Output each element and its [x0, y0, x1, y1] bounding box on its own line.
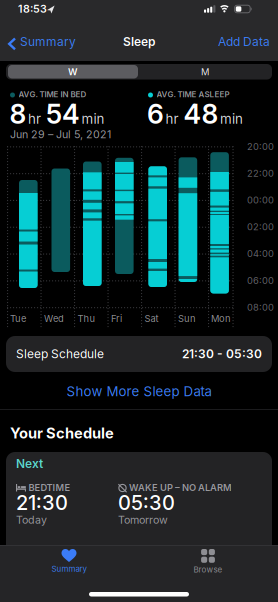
button[interactable]: Summary: [29, 549, 109, 573]
staticText: 06:00: [247, 275, 274, 286]
staticText: BEDTIME: [28, 482, 70, 493]
staticText: Jun 29 – Jul 5, 2021: [10, 128, 111, 141]
staticText: Browse: [193, 565, 222, 574]
button[interactable]: M: [140, 65, 270, 78]
staticText: Fri: [111, 313, 122, 324]
staticText: 21:30 - 05:30: [182, 347, 262, 361]
button[interactable]: Show More Sleep Data: [66, 383, 211, 399]
staticText: Sleep: [123, 34, 155, 49]
button[interactable]: W: [8, 65, 138, 78]
button[interactable]: Summary: [8, 34, 72, 49]
staticText: Your Schedule: [10, 424, 114, 442]
staticText: Show More Sleep Data: [66, 383, 211, 399]
staticText: 08:00: [247, 302, 274, 313]
staticText: min: [81, 111, 104, 127]
staticText: 6: [147, 98, 164, 130]
staticText: min: [220, 111, 243, 127]
staticText: Sleep Schedule: [16, 347, 104, 361]
button[interactable]: Browse: [168, 549, 248, 574]
staticText: Mon: [211, 313, 231, 324]
staticText: 00:00: [247, 195, 274, 206]
staticText: AVG. TIME IN BED: [18, 89, 86, 99]
staticText: Sun: [178, 313, 196, 324]
staticText: 04:00: [247, 248, 274, 259]
staticText: hr: [165, 111, 178, 127]
staticText: 48: [183, 98, 218, 130]
staticText: Next: [16, 456, 43, 471]
staticText: 8: [9, 98, 26, 130]
staticText: AVG. TIME ASLEEP: [156, 89, 229, 99]
staticText: 22:00: [247, 168, 274, 179]
button[interactable]: Next: [6, 452, 272, 602]
staticText: WAKE UP – NO ALARM: [129, 482, 232, 493]
staticText: Summary: [20, 34, 76, 49]
staticText: W: [68, 66, 78, 77]
staticText: Thu: [77, 313, 95, 324]
staticText: 18:53: [18, 2, 47, 15]
staticText: Tue: [10, 313, 26, 324]
staticText: 21:30: [16, 491, 68, 515]
button[interactable]: Sleep Schedule: [6, 336, 272, 372]
staticText: Sat: [144, 313, 158, 324]
staticText: hr: [28, 111, 41, 127]
button[interactable]: Add Data: [218, 34, 270, 49]
staticText: M: [201, 66, 209, 77]
staticText: Tomorrow: [118, 513, 168, 526]
staticText: 05:30: [118, 491, 175, 515]
staticText: 54: [46, 98, 80, 130]
staticText: Summary: [51, 564, 86, 573]
staticText: Wed: [44, 313, 64, 324]
staticText: 20:00: [247, 141, 274, 152]
staticText: Today: [16, 513, 47, 526]
staticText: Add Data: [218, 34, 270, 49]
staticText: 02:00: [247, 221, 274, 232]
